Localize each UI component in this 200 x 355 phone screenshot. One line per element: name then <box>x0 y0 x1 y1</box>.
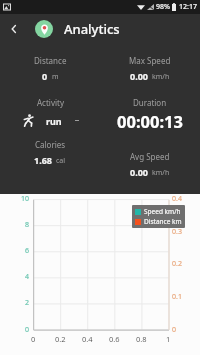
other: Running activity <box>22 114 35 127</box>
staticText: 0.00 <box>130 166 148 178</box>
staticText: Distance km <box>144 217 182 226</box>
staticText: 0.3 <box>172 227 182 237</box>
staticText: 0.2 <box>55 334 66 344</box>
staticText: m <box>52 72 59 82</box>
staticText: 0.00 <box>130 70 148 82</box>
staticText: km/h <box>152 168 170 178</box>
staticText: 00:00:13 <box>117 110 183 132</box>
staticText: 2 <box>25 298 30 308</box>
staticText: 0.2 <box>172 259 182 269</box>
staticText: Activity <box>37 97 64 108</box>
staticText: 0 <box>25 325 30 335</box>
staticText: 0.4 <box>82 334 93 344</box>
staticText: 4 <box>25 272 30 282</box>
staticText: 0 <box>172 325 177 335</box>
staticText: 0.1 <box>172 292 182 302</box>
button[interactable]: Speed km/h <box>132 205 185 228</box>
staticText: 12:17 <box>179 2 197 12</box>
staticText: cal <box>56 156 66 166</box>
staticText: 0 <box>31 334 36 344</box>
staticText: 0 <box>42 70 48 82</box>
staticText: Distance <box>34 55 67 66</box>
staticText: 98% <box>156 2 170 12</box>
staticText: Analytics <box>64 20 120 38</box>
staticText: run <box>46 115 62 127</box>
staticText: 1 <box>166 334 171 344</box>
staticText: Calories <box>35 139 66 150</box>
staticText: km/h <box>152 72 170 82</box>
staticText: 6 <box>25 246 30 256</box>
staticText: 0.8 <box>136 334 147 344</box>
staticText: 10 <box>21 194 30 204</box>
staticText: Avg Speed <box>130 151 170 162</box>
button[interactable]: Back <box>0 15 28 43</box>
staticText: 1.68 <box>34 154 52 166</box>
staticText: Speed km/h <box>144 207 181 216</box>
staticText: Max Speed <box>129 55 171 66</box>
staticText: Duration <box>133 97 167 108</box>
staticText: 0.6 <box>109 334 120 344</box>
staticText: 0.4 <box>172 194 182 204</box>
staticText: 8 <box>25 220 30 230</box>
